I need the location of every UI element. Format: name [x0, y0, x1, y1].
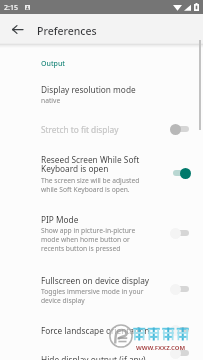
staticText: native	[41, 96, 153, 105]
staticText: Show app in picture-in-picture mode when…	[41, 226, 153, 253]
staticText: Hide display output (if any)	[41, 354, 153, 360]
button[interactable]: Toggle off	[169, 282, 193, 296]
button[interactable]	[0, 79, 203, 110]
staticText: Stretch to fit display	[41, 124, 153, 135]
button[interactable]: Toggle off	[169, 122, 193, 136]
button[interactable]: Toggle off	[169, 226, 193, 240]
staticText: Reseed Screen While Soft Keyboard is ope…	[41, 154, 153, 175]
button[interactable]	[0, 346, 203, 360]
staticText: Display resolution mode	[41, 84, 153, 95]
button[interactable]: Output	[41, 59, 65, 69]
staticText: PIP Mode	[41, 214, 153, 225]
staticText: WWW.FXXZ.COM	[136, 344, 186, 352]
staticText: Force landscape orientation	[41, 325, 153, 336]
staticText: Output	[41, 59, 65, 69]
staticText: Fullscreen on device display	[41, 275, 153, 286]
staticText: 2:15	[4, 3, 18, 13]
button[interactable]: Toggle off	[169, 346, 193, 360]
button[interactable]	[0, 207, 203, 258]
staticText: Toggles immersive mode in your device di…	[41, 287, 153, 305]
button[interactable]	[0, 268, 203, 310]
staticText: Preferences	[37, 24, 97, 38]
button[interactable]: Toggle on	[169, 166, 193, 180]
button[interactable]: Toggle off	[169, 323, 193, 337]
button[interactable]	[0, 318, 203, 341]
button[interactable]	[0, 117, 203, 140]
button[interactable]: Back	[6, 18, 28, 40]
staticText: The screen size will be adjusted while S…	[41, 176, 153, 194]
staticText: WWW.FXXZ.COM	[135, 343, 186, 351]
button[interactable]	[0, 147, 203, 199]
